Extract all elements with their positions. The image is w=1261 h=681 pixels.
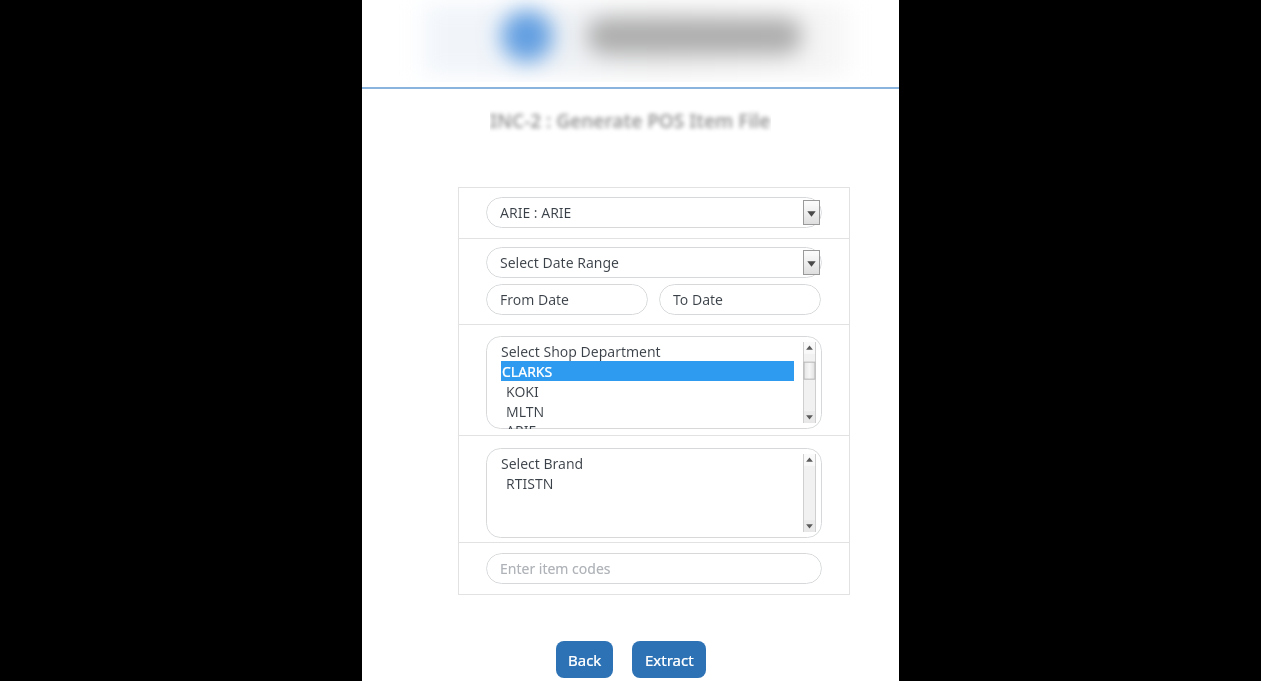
button[interactable]: KOKI bbox=[501, 381, 794, 401]
button[interactable]: RTISTN bbox=[501, 473, 794, 493]
button[interactable]: ARIE bbox=[501, 421, 794, 429]
staticText: Enter item codes bbox=[500, 559, 611, 578]
staticText: To Date bbox=[673, 290, 723, 309]
button[interactable]: Open dropdown bbox=[803, 200, 820, 225]
staticText: ARIE bbox=[506, 421, 537, 429]
staticText: From Date bbox=[500, 290, 569, 309]
staticText: Select Brand bbox=[501, 454, 584, 473]
button[interactable]: Back bbox=[556, 641, 613, 678]
staticText: Select Date Range bbox=[500, 253, 619, 272]
button[interactable]: From Date bbox=[486, 284, 648, 315]
button[interactable]: Enter item codes bbox=[486, 553, 822, 584]
button[interactable]: CLARKS bbox=[501, 361, 794, 381]
staticText: KOKI bbox=[506, 382, 539, 401]
staticText: Back bbox=[568, 650, 602, 670]
staticText: Select Shop Department bbox=[501, 342, 661, 361]
button[interactable]: Scroll list bbox=[803, 454, 816, 532]
button[interactable]: ARIE : ARIE bbox=[486, 197, 822, 228]
button[interactable]: MLTN bbox=[501, 401, 794, 421]
staticText: MLTN bbox=[506, 402, 545, 421]
staticText: RTISTN bbox=[506, 474, 554, 493]
staticText: CLARKS bbox=[502, 362, 553, 381]
staticText: Extract bbox=[645, 650, 694, 670]
button[interactable]: To Date bbox=[659, 284, 821, 315]
button[interactable]: Scroll list bbox=[803, 342, 816, 423]
button[interactable]: Extract bbox=[632, 641, 706, 678]
staticText: ARIE : ARIE bbox=[500, 203, 572, 222]
staticText: INC-2 : Generate POS Item File bbox=[490, 108, 771, 134]
button[interactable]: Select Date Range bbox=[486, 247, 822, 278]
button[interactable]: Open dropdown bbox=[803, 250, 820, 275]
